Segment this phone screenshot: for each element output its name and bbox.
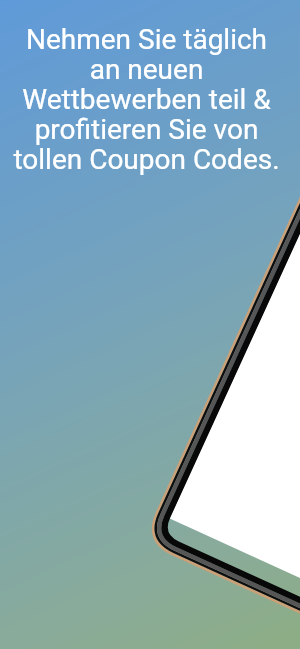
staticText: Nehmen Sie täglich an neuen Wettbewerben… bbox=[13, 23, 280, 176]
